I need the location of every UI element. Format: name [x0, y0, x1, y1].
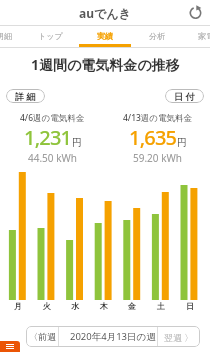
staticText: 〈前週	[29, 331, 56, 342]
staticText: 1週間の電気料金の推移	[31, 55, 180, 74]
staticText: 円	[177, 136, 187, 149]
staticText: 実績	[97, 31, 113, 41]
staticText: 家電	[198, 31, 210, 41]
button[interactable]: 家電	[198, 31, 210, 41]
staticText: 44.50 kWh	[28, 151, 77, 165]
staticText: 詳 細	[15, 90, 36, 102]
staticText: 円	[72, 136, 82, 149]
staticText: 分析	[149, 31, 165, 41]
staticText: 土	[157, 301, 165, 311]
button[interactable]: 明細	[0, 31, 12, 41]
button[interactable]	[0, 341, 20, 352]
staticText: 火	[43, 301, 51, 311]
staticText: 明細	[0, 31, 12, 41]
button[interactable]: 〈前週	[26, 326, 59, 347]
button[interactable]: 分析	[149, 31, 165, 41]
staticText: 翌週 〉	[164, 331, 194, 343]
staticText: auでんき	[79, 5, 131, 21]
staticText: 59.20 kWh	[133, 151, 182, 165]
button[interactable]	[188, 5, 203, 20]
staticText: 1,635	[129, 124, 177, 151]
button[interactable]: 日 付	[165, 89, 204, 103]
staticText: 4/6週の電気料金	[20, 112, 85, 124]
staticText: トップ	[38, 31, 63, 41]
staticText: 日 付	[174, 90, 195, 102]
button[interactable]: 詳 細	[6, 89, 45, 103]
staticText: 4/13週の電気料金	[123, 112, 193, 124]
button[interactable]: 翌週 〉	[157, 326, 200, 347]
staticText: 月	[14, 301, 22, 311]
staticText: 金	[128, 301, 136, 311]
staticText: 1,231	[24, 124, 72, 151]
button[interactable]: 2020年4月13日の週	[70, 330, 156, 343]
button[interactable]: 実績	[97, 31, 113, 41]
staticText: 日	[186, 301, 194, 311]
button[interactable]: トップ	[38, 31, 63, 41]
staticText: 木	[100, 301, 108, 311]
staticText: 2020年4月13日の週	[70, 330, 156, 343]
staticText: 水	[71, 301, 79, 311]
